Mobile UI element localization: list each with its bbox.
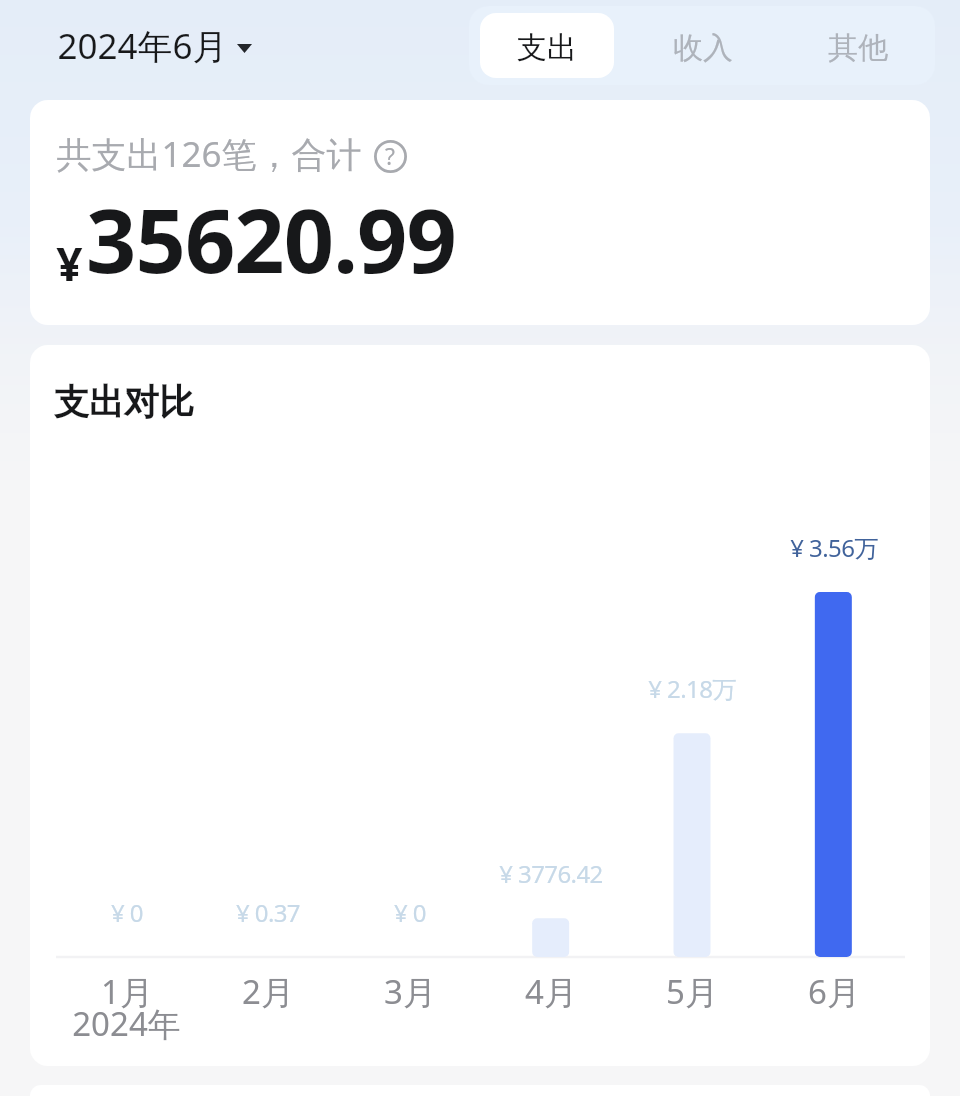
button[interactable]: 其他 [791,13,924,78]
button[interactable]: 支出对比 [30,345,930,1066]
staticText: 支出 [517,29,577,67]
staticText: ¥ 2.18万 [648,672,736,705]
button[interactable]: 2024年6月 [57,22,252,70]
staticText: ¥ [56,232,83,295]
staticText: 3月 [384,969,436,1014]
button[interactable]: 支出 [480,13,614,78]
staticText: 其他 [828,29,888,67]
staticText: ? [385,140,395,171]
staticText: 共支出126笔，合计 [56,130,362,178]
staticText: ¥ 3776.42 [499,857,603,890]
staticText: 2024年6月 [57,22,228,70]
button[interactable]: Help [372,138,408,174]
staticText: ¥ 3.56万 [790,531,878,564]
staticText: ¥ 0 [111,896,143,929]
staticText: 4月 [525,969,577,1014]
staticText: 2月 [242,969,294,1014]
staticText: 支出对比 [54,380,194,424]
staticText: 2024年 [72,1001,181,1046]
staticText: 35620.99 [86,179,456,299]
button[interactable]: 收入 [636,13,769,78]
staticText: 6月 [808,969,860,1014]
button[interactable]: 共支出126笔，合计 [30,100,930,325]
staticText: 收入 [673,29,733,67]
staticText: ¥ 0 [394,896,426,929]
staticText: ¥ 0.37 [236,896,300,929]
staticText: 5月 [666,969,718,1014]
staticText: 1月 [101,969,153,1014]
